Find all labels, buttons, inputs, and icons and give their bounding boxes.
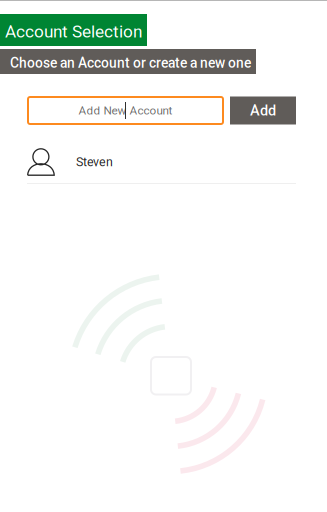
button[interactable]: Add	[230, 96, 296, 124]
button[interactable]: Steven	[0, 141, 327, 184]
staticText: Add	[250, 102, 276, 119]
staticText: Choose an Account or create a new one	[10, 55, 251, 71]
staticText: Account Selection	[5, 21, 142, 42]
button[interactable]: Add New Account	[27, 96, 224, 125]
staticText: Add New Account	[78, 104, 172, 117]
staticText: Steven	[76, 155, 113, 169]
